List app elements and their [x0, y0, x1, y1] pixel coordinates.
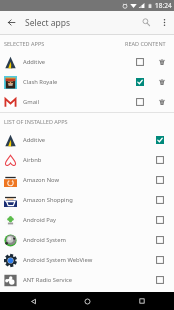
staticText: Amazon Shopping: [23, 196, 146, 204]
staticText: Clash Royale: [23, 78, 129, 86]
button[interactable]: Additive: [0, 130, 174, 150]
button[interactable]: Android System WebView: [0, 250, 174, 270]
button[interactable]: Toggle read content: [129, 72, 150, 92]
button[interactable]: ANT Radio Service: [0, 270, 174, 290]
button[interactable]: Toggle read content: [129, 52, 150, 72]
button[interactable]: Toggle read content: [146, 270, 174, 290]
button[interactable]: Toggle read content: [146, 210, 174, 230]
staticText: SELECTED APPS: [4, 40, 45, 47]
button[interactable]: Additive: [0, 52, 174, 72]
staticText: ANT Radio Service: [23, 276, 146, 284]
button[interactable]: Toggle read content: [146, 190, 174, 210]
staticText: Android System WebView: [23, 256, 146, 264]
staticText: Additive: [23, 136, 146, 144]
button[interactable]: Delete: [150, 72, 174, 92]
staticText: Airbnb: [23, 156, 146, 164]
button[interactable]: Home: [65, 292, 109, 310]
staticText: READ CONTENT: [125, 40, 166, 47]
button[interactable]: Toggle read content: [146, 150, 174, 170]
button[interactable]: Delete: [150, 92, 174, 112]
button[interactable]: Gmail: [0, 92, 174, 112]
button[interactable]: Recent apps: [120, 292, 164, 310]
staticText: Amazon Now: [23, 176, 146, 184]
button[interactable]: Toggle read content: [146, 170, 174, 190]
staticText: Select apps: [25, 17, 71, 29]
staticText: 18:24: [155, 1, 172, 10]
staticText: Android System: [23, 236, 146, 244]
staticText: Additive: [23, 58, 129, 66]
button[interactable]: Airbnb: [0, 150, 174, 170]
button[interactable]: Clash Royale: [0, 72, 174, 92]
button[interactable]: Amazon Shopping: [0, 190, 174, 210]
button[interactable]: Amazon Now: [0, 170, 174, 190]
button[interactable]: Toggle read content: [146, 130, 174, 150]
staticText: Android Pay: [23, 216, 146, 224]
button[interactable]: Android Pay: [0, 210, 174, 230]
button[interactable]: Toggle read content: [146, 250, 174, 270]
button[interactable]: Back: [11, 292, 55, 310]
button[interactable]: More options: [155, 11, 174, 34]
staticText: LIST OF INSTALLED APPS: [4, 118, 68, 125]
button[interactable]: Android System: [0, 230, 174, 250]
button[interactable]: Search: [137, 11, 155, 34]
button[interactable]: Delete: [150, 52, 174, 72]
staticText: Gmail: [23, 98, 129, 106]
button[interactable]: Toggle read content: [129, 92, 150, 112]
button[interactable]: Navigate up: [0, 11, 22, 34]
button[interactable]: Toggle read content: [146, 230, 174, 250]
